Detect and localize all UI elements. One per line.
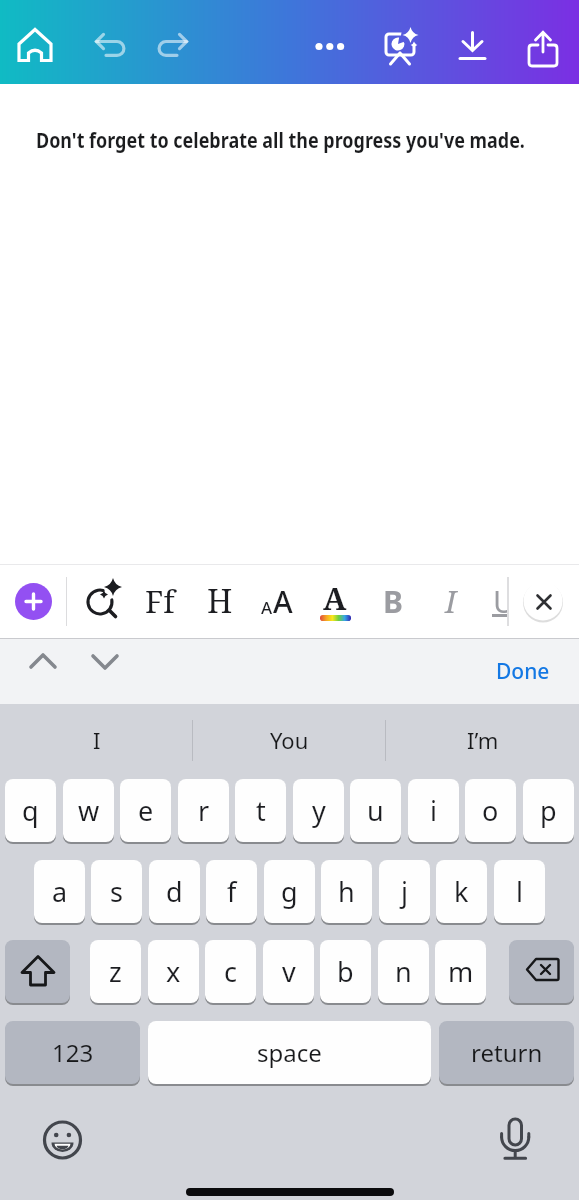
button[interactable] <box>493 1112 541 1160</box>
button[interactable]: u <box>350 779 401 842</box>
button[interactable]: I <box>0 704 193 775</box>
staticText: a <box>52 873 68 910</box>
button[interactable]: 123 <box>5 1021 140 1084</box>
staticText: B <box>383 581 403 622</box>
staticText: space <box>257 1036 322 1069</box>
staticText: A <box>273 581 293 622</box>
staticText: y <box>312 792 326 829</box>
staticText: n <box>395 953 412 990</box>
staticText: H <box>207 579 233 623</box>
button[interactable]: q <box>5 779 56 842</box>
staticText: You <box>270 725 309 755</box>
button[interactable] <box>5 940 70 1003</box>
button[interactable]: o <box>465 779 516 842</box>
button[interactable]: z <box>90 940 141 1003</box>
button[interactable]: v <box>263 940 314 1003</box>
button[interactable]: I <box>427 577 475 625</box>
staticText: l <box>516 873 523 910</box>
button[interactable]: Ff <box>136 577 184 625</box>
staticText: k <box>454 873 469 910</box>
staticText: v <box>282 953 296 990</box>
button[interactable]: k <box>436 860 487 923</box>
staticText: o <box>482 792 499 829</box>
staticText: g <box>281 873 298 910</box>
staticText: x <box>166 953 181 990</box>
button[interactable]: d <box>149 860 200 923</box>
button[interactable]: U <box>488 577 520 625</box>
staticText: i <box>430 792 437 829</box>
button[interactable]: y <box>293 779 344 842</box>
button[interactable]: f <box>206 860 257 923</box>
button[interactable]: x <box>148 940 199 1003</box>
button[interactable]: r <box>178 779 229 842</box>
button[interactable]: c <box>205 940 256 1003</box>
button[interactable] <box>308 24 352 68</box>
staticText: A <box>261 596 273 619</box>
button[interactable]: h <box>321 860 372 923</box>
button[interactable] <box>13 24 57 68</box>
button[interactable]: space <box>148 1021 431 1084</box>
button[interactable]: You <box>193 704 386 775</box>
button[interactable] <box>378 24 422 68</box>
staticText: m <box>448 953 474 990</box>
button[interactable]: e <box>120 779 171 842</box>
button[interactable] <box>82 641 128 687</box>
button[interactable]: j <box>379 860 430 923</box>
button[interactable]: s <box>91 860 142 923</box>
staticText: w <box>78 792 100 829</box>
button[interactable]: b <box>320 940 371 1003</box>
staticText: U <box>493 581 515 622</box>
button[interactable]: A <box>253 577 301 625</box>
staticText: s <box>110 873 123 910</box>
staticText: q <box>22 792 39 829</box>
button[interactable]: B <box>369 577 417 625</box>
staticText: Don't forget to celebrate all the progre… <box>36 126 525 155</box>
button[interactable]: p <box>523 779 574 842</box>
button[interactable] <box>150 26 194 70</box>
button[interactable] <box>89 26 133 70</box>
staticText: 123 <box>52 1036 94 1069</box>
staticText: b <box>337 953 354 990</box>
button[interactable]: return <box>439 1021 574 1084</box>
button[interactable] <box>450 24 494 68</box>
button[interactable]: H <box>196 577 244 625</box>
staticText: t <box>256 792 266 829</box>
staticText: I <box>445 580 457 622</box>
button[interactable] <box>79 577 127 625</box>
button[interactable]: I’m <box>386 704 579 775</box>
staticText: Ff <box>145 580 175 622</box>
button[interactable]: Done <box>480 648 566 694</box>
button[interactable] <box>521 21 565 65</box>
staticText: p <box>540 792 557 829</box>
staticText: r <box>198 792 210 829</box>
staticText: A <box>323 577 347 613</box>
button[interactable] <box>15 583 52 620</box>
button[interactable]: w <box>63 779 114 842</box>
staticText: u <box>367 792 384 829</box>
button[interactable] <box>41 1118 85 1162</box>
staticText: e <box>138 792 154 829</box>
button[interactable]: m <box>435 940 486 1003</box>
button[interactable] <box>509 940 574 1003</box>
button[interactable]: i <box>408 779 459 842</box>
button[interactable]: a <box>34 860 85 923</box>
button[interactable]: t <box>235 779 286 842</box>
staticText: I’m <box>467 725 499 755</box>
staticText: z <box>109 953 122 990</box>
button[interactable]: A <box>311 577 359 625</box>
staticText: return <box>471 1036 543 1069</box>
staticText: f <box>227 873 237 910</box>
button[interactable]: g <box>264 860 315 923</box>
staticText: Done <box>496 657 550 686</box>
button[interactable] <box>524 582 563 621</box>
staticText: c <box>224 953 237 990</box>
button[interactable] <box>20 641 66 687</box>
staticText: d <box>166 873 183 910</box>
button[interactable]: l <box>494 860 545 923</box>
staticText: h <box>338 873 355 910</box>
staticText: j <box>401 873 408 910</box>
staticText: I <box>93 725 101 755</box>
button[interactable]: n <box>378 940 429 1003</box>
